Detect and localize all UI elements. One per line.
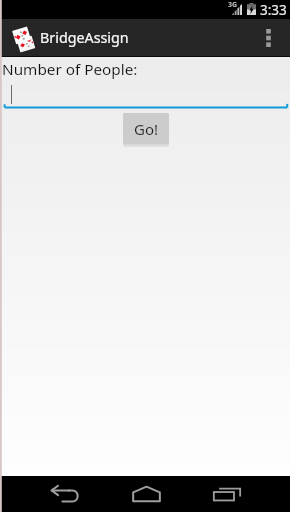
- staticText: 3G: [228, 0, 238, 10]
- staticText: BridgeAssign: [40, 28, 129, 47]
- button[interactable]: Home: [126, 476, 166, 512]
- button[interactable]: More options: [256, 20, 281, 56]
- button[interactable]: Go!: [123, 113, 169, 147]
- staticText: Number of People:: [2, 59, 138, 80]
- staticText: Go!: [134, 119, 159, 139]
- button[interactable]: Back: [45, 476, 85, 512]
- button[interactable]: Number of people input: [0, 78, 290, 110]
- button[interactable]: Recent apps: [207, 476, 247, 512]
- staticText: 3:33: [260, 1, 287, 19]
